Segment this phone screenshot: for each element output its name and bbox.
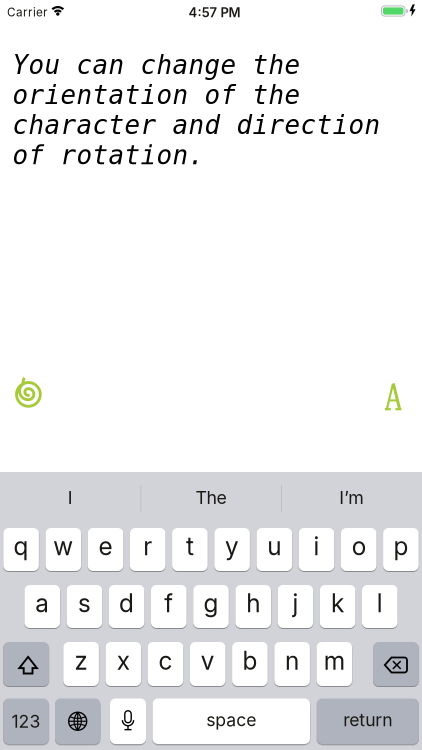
button[interactable]: x	[105, 642, 141, 686]
button[interactable]: w	[45, 528, 81, 571]
staticText: m	[324, 646, 345, 676]
button[interactable]: e	[88, 528, 123, 571]
button[interactable]: j	[278, 585, 313, 628]
button[interactable]: p	[383, 528, 419, 571]
staticText: I’m	[339, 487, 364, 508]
staticText: s	[78, 588, 91, 618]
staticText: g	[203, 588, 218, 618]
button[interactable]: s	[67, 585, 102, 628]
staticText: r	[143, 531, 152, 561]
staticText: I	[68, 487, 73, 508]
button[interactable]: z	[63, 642, 99, 686]
button[interactable]: q	[3, 528, 39, 571]
staticText: 123	[11, 711, 40, 732]
button[interactable]: I	[0, 472, 141, 528]
staticText: w	[53, 531, 73, 561]
staticText: y	[225, 531, 239, 561]
button[interactable]: d	[109, 585, 144, 628]
button[interactable]: o	[341, 528, 376, 571]
button[interactable]: l	[362, 585, 398, 628]
button[interactable]: t	[172, 528, 208, 571]
staticText: space	[206, 709, 256, 731]
button[interactable]: y	[214, 528, 250, 571]
button[interactable]: i	[299, 528, 334, 571]
staticText: You can change the orientation of the ch…	[12, 50, 380, 170]
button[interactable]: h	[235, 585, 271, 628]
staticText: a	[35, 588, 49, 618]
staticText: e	[98, 531, 112, 561]
staticText: z	[75, 646, 88, 676]
staticText: d	[119, 588, 134, 618]
button[interactable]: Numbers	[3, 698, 49, 744]
button[interactable]: g	[193, 585, 229, 628]
staticText: j	[292, 588, 298, 618]
staticText: 4:57 PM	[188, 5, 240, 20]
staticText: x	[117, 646, 130, 676]
staticText: k	[331, 588, 344, 618]
staticText: p	[393, 531, 408, 561]
button[interactable]: v	[190, 642, 225, 686]
button[interactable]: b	[232, 642, 268, 686]
staticText: return	[343, 709, 392, 731]
staticText: h	[246, 588, 260, 618]
staticText: v	[201, 646, 215, 676]
button[interactable]: u	[256, 528, 292, 571]
button[interactable]: k	[320, 585, 355, 628]
button[interactable]: a	[24, 585, 60, 628]
button[interactable]: Shift	[3, 642, 49, 686]
staticText: q	[14, 531, 29, 561]
button[interactable]: n	[274, 642, 310, 686]
staticText: b	[242, 646, 257, 676]
staticText: i	[313, 531, 319, 561]
button[interactable]: r	[130, 528, 165, 571]
button[interactable]: Next keyboard	[55, 698, 100, 744]
staticText: u	[267, 531, 281, 561]
staticText: t	[186, 531, 194, 561]
staticText: n	[285, 646, 299, 676]
button[interactable]: Dictate	[110, 698, 146, 744]
staticText: The	[195, 487, 226, 508]
staticText: f	[164, 588, 173, 618]
button[interactable]: f	[151, 585, 187, 628]
button[interactable]: m	[316, 642, 352, 686]
button[interactable]: c	[148, 642, 183, 686]
staticText: o	[352, 531, 366, 561]
button[interactable]: The	[141, 472, 281, 528]
button[interactable]: space	[152, 698, 310, 744]
button[interactable]: I’m	[281, 472, 422, 528]
button[interactable]: return	[317, 698, 419, 744]
staticText: Carrier	[7, 5, 47, 19]
staticText: l	[377, 588, 383, 618]
staticText: c	[158, 646, 172, 676]
button[interactable]: Delete	[373, 642, 419, 686]
